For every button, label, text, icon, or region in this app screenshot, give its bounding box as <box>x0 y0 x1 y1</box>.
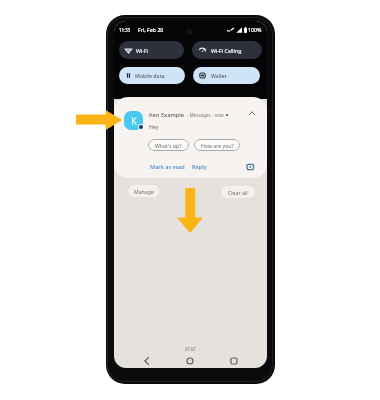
button[interactable]: Mark as read <box>150 163 185 171</box>
button[interactable]: Wi-Fi Calling <box>192 41 262 59</box>
staticText: Wi-Fi Calling <box>211 47 242 54</box>
staticText: 11:35 <box>119 27 131 33</box>
staticText: Mobile data <box>135 72 165 79</box>
staticText: · Messages · now <box>187 112 224 118</box>
staticText: Wallet <box>211 72 227 79</box>
button[interactable]: Back <box>139 353 155 368</box>
staticText: Clear all <box>228 189 248 196</box>
button[interactable]: Mobile data <box>119 67 185 84</box>
staticText: Hey <box>149 123 159 130</box>
staticText: Wi-Fi <box>136 47 149 54</box>
button[interactable]: Manage <box>128 185 159 197</box>
button[interactable]: Clear all <box>221 186 255 198</box>
staticText: Ken Example <box>149 111 185 119</box>
button[interactable]: Reply <box>192 163 207 171</box>
staticText: How are you? <box>201 142 234 149</box>
button[interactable]: Wi-Fi <box>119 41 184 59</box>
button[interactable]: What's up? <box>148 139 189 151</box>
button[interactable]: Wallet <box>193 67 260 84</box>
button[interactable]: Insert image <box>245 161 257 173</box>
button[interactable]: Recents <box>226 353 242 368</box>
button[interactable]: Collapse notification <box>246 107 258 119</box>
button[interactable]: Home <box>182 353 198 368</box>
button[interactable]: How are you? <box>194 139 240 151</box>
staticText: 100% <box>248 26 262 33</box>
staticText: Manage <box>134 188 154 195</box>
staticText: What's up? <box>155 142 182 149</box>
staticText: AT&T <box>114 346 267 353</box>
staticText: Fri, Feb 20 <box>138 26 164 33</box>
staticText: K <box>131 114 137 128</box>
